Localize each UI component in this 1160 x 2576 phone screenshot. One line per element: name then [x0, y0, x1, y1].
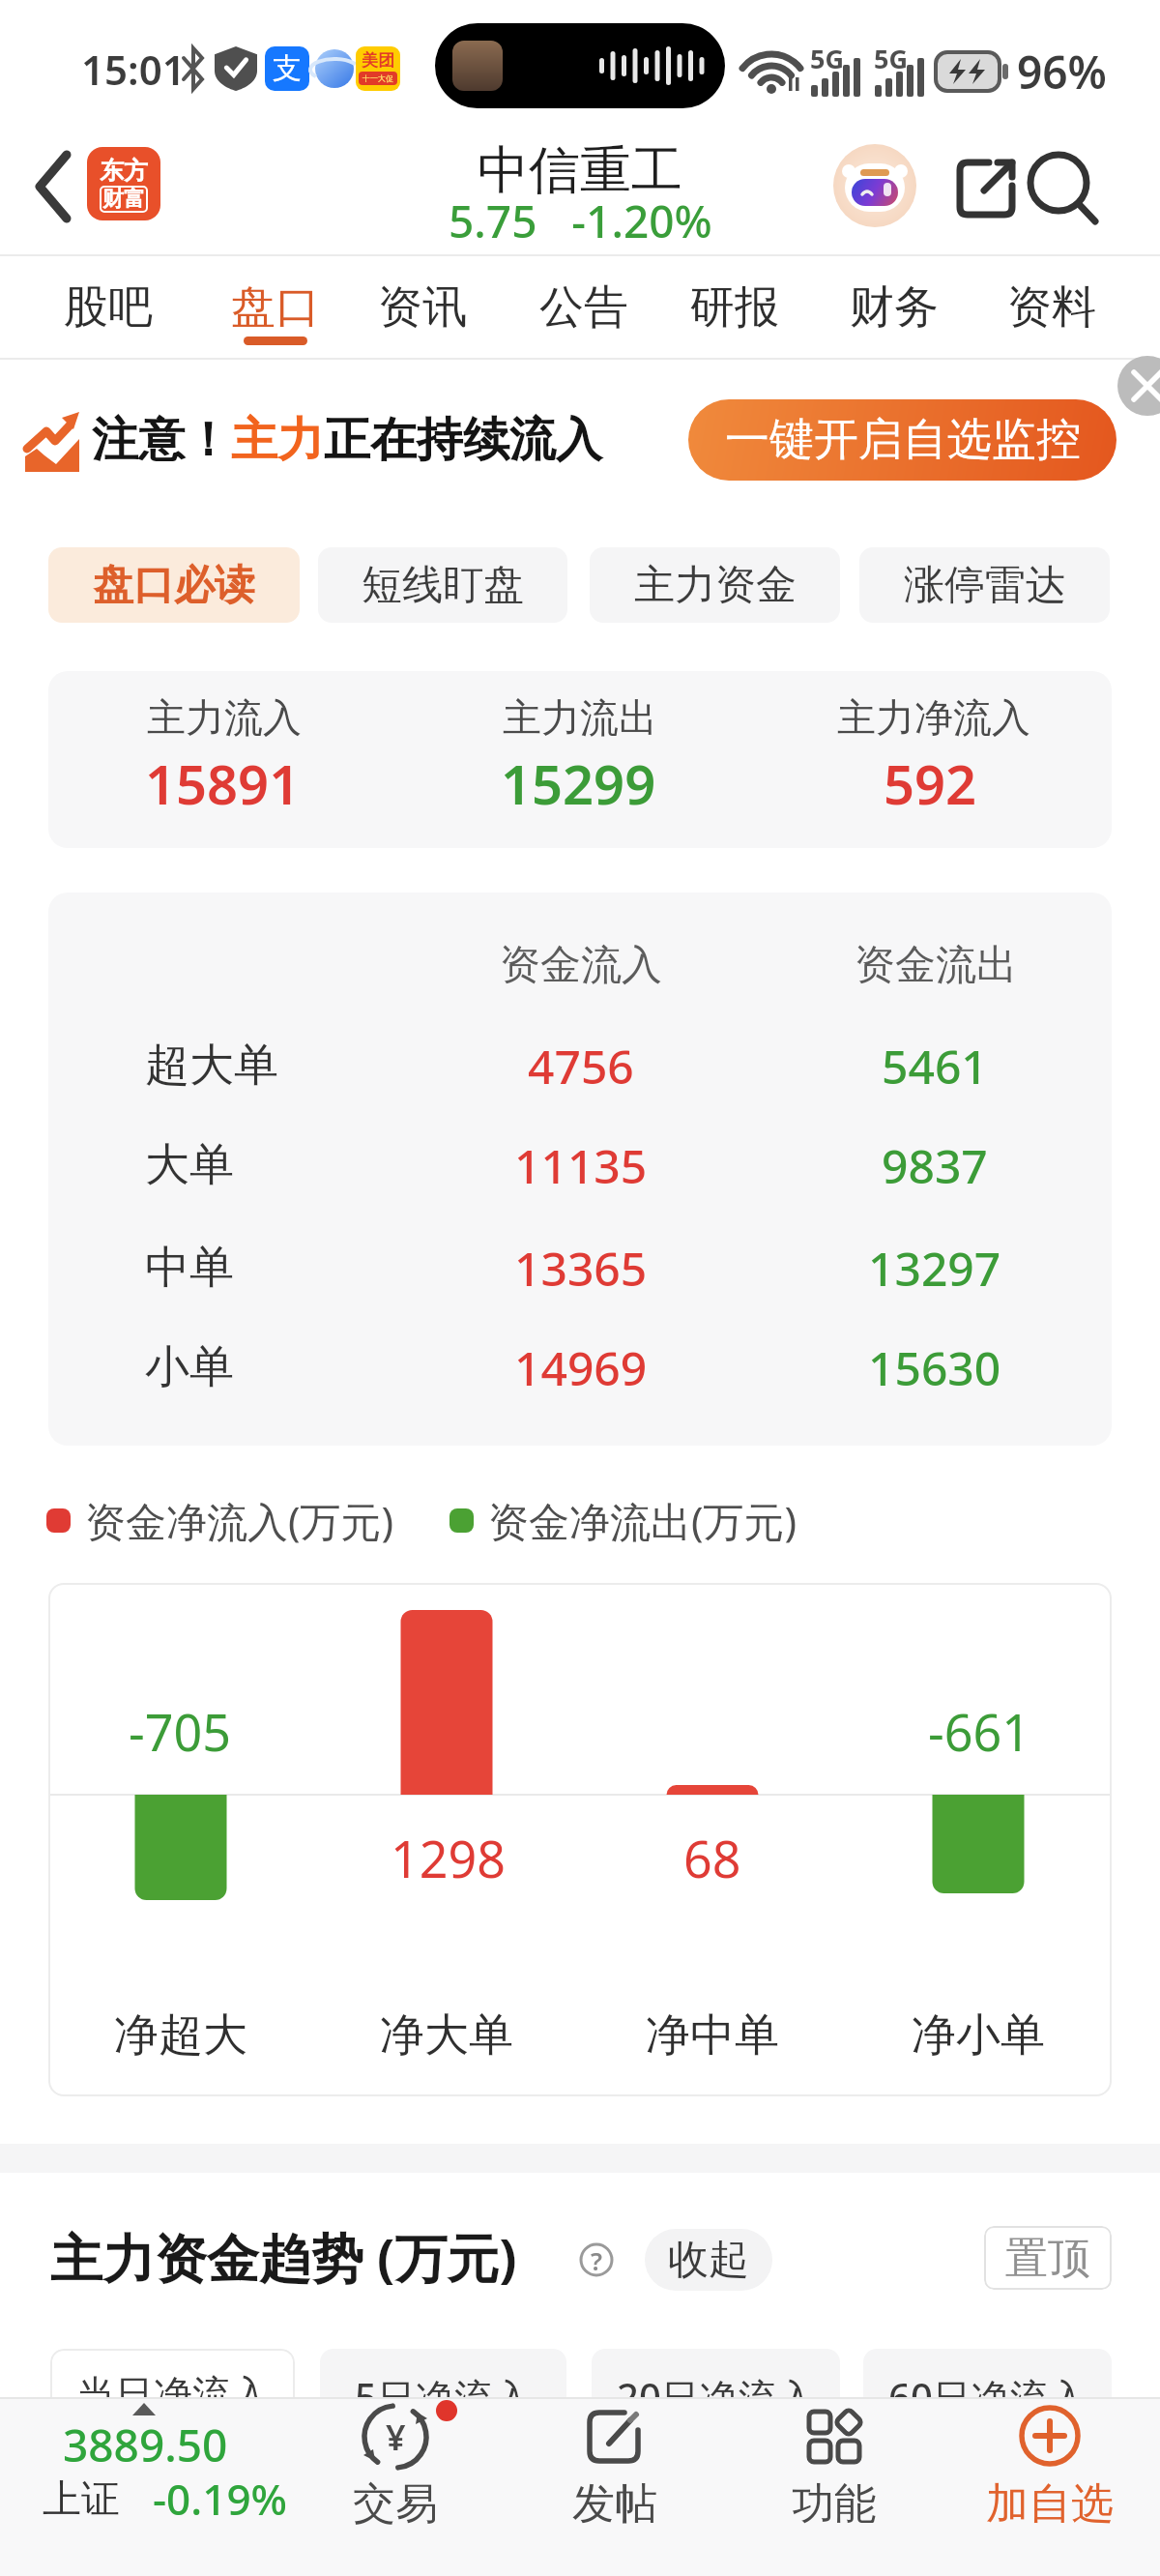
button[interactable]: 20日净流入	[592, 2349, 840, 2436]
button[interactable]	[328, 2401, 463, 2541]
button[interactable]: 研报	[652, 256, 817, 358]
staticText: 15:01	[81, 42, 186, 97]
staticText: 60日净流入	[888, 2370, 1087, 2423]
button[interactable]	[982, 2401, 1117, 2541]
staticText: 592	[884, 746, 977, 820]
button[interactable]: 盘口	[193, 256, 358, 358]
staticText: 盘口必读	[93, 560, 255, 611]
button[interactable]	[1017, 143, 1106, 232]
staticText: 财务	[850, 279, 939, 336]
staticText: 5461	[882, 1035, 988, 1098]
staticText: 5日净流入	[355, 2370, 532, 2423]
staticText: 加自选	[986, 2477, 1114, 2531]
staticText: 当日净流入	[76, 2370, 270, 2418]
staticText: 9837	[882, 1134, 988, 1197]
button[interactable]: 东方	[87, 147, 160, 220]
staticText: 净小单	[912, 2007, 1045, 2064]
staticText: 5.75 -1.20%	[449, 190, 712, 251]
button[interactable]	[1117, 356, 1160, 416]
button[interactable]	[547, 2401, 682, 2541]
staticText: 超大单	[145, 1038, 278, 1094]
staticText: 5G	[874, 41, 908, 76]
staticText: 11135	[514, 1134, 648, 1197]
button[interactable]	[833, 144, 916, 227]
staticText: 20日净流入	[617, 2370, 816, 2423]
staticText: 资金流出	[855, 940, 1017, 991]
button[interactable]	[19, 140, 87, 232]
staticText: 公告	[539, 279, 628, 336]
button[interactable]: 盘口必读	[48, 547, 300, 623]
staticText: 东方	[100, 156, 148, 186]
button[interactable]: 一键开启自选监控	[688, 399, 1116, 481]
staticText: 净超大	[114, 2007, 247, 2064]
staticText: 96%	[1017, 42, 1107, 102]
staticText: 主力资金	[634, 560, 797, 611]
staticText: 十一大促	[362, 73, 393, 83]
staticText: ?	[591, 2243, 602, 2277]
staticText: 资金流入	[500, 940, 662, 991]
staticText: 资金净流出(万元)	[488, 1493, 797, 1548]
staticText: 支	[273, 50, 302, 87]
button[interactable]: 股吧	[26, 256, 190, 358]
staticText: 发帖	[572, 2477, 657, 2531]
staticText: 主力资金趋势 (万元)	[50, 2221, 517, 2293]
staticText: 净大单	[380, 2007, 513, 2064]
staticText: 68	[683, 1824, 741, 1892]
staticText: 15630	[868, 1336, 1001, 1399]
staticText: 正在持续流入	[324, 411, 602, 469]
staticText: 13365	[514, 1237, 648, 1300]
button[interactable]: 主力资金	[590, 547, 840, 623]
staticText: 1298	[391, 1824, 506, 1892]
staticText: 盘口	[231, 279, 320, 336]
staticText: 交易	[353, 2477, 438, 2531]
staticText: 研报	[690, 279, 779, 336]
staticText: 小单	[145, 1339, 234, 1395]
button[interactable]: 当日净流入	[50, 2349, 295, 2436]
staticText: ¥	[386, 2414, 406, 2461]
staticText: 中单	[145, 1240, 234, 1296]
staticText: 净中单	[646, 2007, 779, 2064]
staticText: 上证	[43, 2474, 120, 2523]
staticText: 资讯	[378, 279, 467, 336]
staticText: 资料	[1007, 279, 1096, 336]
staticText: 美团	[362, 50, 394, 71]
button[interactable]	[767, 2401, 902, 2541]
button[interactable]: 公告	[502, 256, 666, 358]
button[interactable]: 资讯	[340, 256, 505, 358]
staticText: 一键开启自选监控	[725, 412, 1081, 468]
staticText: 中信重工	[478, 138, 682, 203]
staticText: 5G	[810, 41, 844, 76]
button[interactable]: 涨停雷达	[859, 547, 1110, 623]
staticText: 短线盯盘	[362, 560, 524, 611]
staticText: 4756	[528, 1035, 634, 1098]
staticText: 注意！	[92, 411, 231, 469]
staticText: 涨停雷达	[904, 560, 1066, 611]
button[interactable]: 置顶	[984, 2226, 1112, 2290]
staticText: 置顶	[1005, 2232, 1090, 2285]
button[interactable]	[29, 2403, 296, 2538]
staticText: 15299	[501, 746, 656, 820]
staticText: 14969	[514, 1336, 648, 1399]
staticText: 主力净流入	[837, 693, 1030, 742]
staticText: 15891	[145, 746, 301, 820]
button[interactable]: 财务	[812, 256, 976, 358]
button[interactable]: 5日净流入	[320, 2349, 566, 2436]
button[interactable]: 60日净流入	[863, 2349, 1112, 2436]
staticText: -705	[129, 1697, 231, 1766]
staticText: 主力流出	[503, 693, 657, 742]
staticText: -0.19%	[153, 2470, 288, 2528]
button[interactable]	[942, 143, 1031, 232]
staticText: 主力	[231, 411, 324, 469]
staticText: -661	[928, 1697, 1030, 1766]
button[interactable]: 短线盯盘	[318, 547, 567, 623]
staticText: 13297	[868, 1237, 1001, 1300]
staticText: 收起	[668, 2235, 749, 2286]
staticText: 3889.50	[63, 2415, 228, 2475]
staticText: 大单	[145, 1137, 234, 1193]
button[interactable]: 资料	[970, 256, 1134, 358]
staticText: 主力流入	[147, 693, 302, 742]
staticText: 资金净流入(万元)	[85, 1493, 394, 1548]
staticText: 财富	[102, 186, 145, 213]
staticText: 股吧	[64, 279, 153, 336]
button[interactable]: 收起	[645, 2229, 772, 2291]
